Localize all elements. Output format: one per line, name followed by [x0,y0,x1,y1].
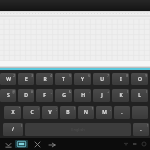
staticText: V [48,109,52,116]
button[interactable]: E [18,73,34,85]
button[interactable]: V [42,106,58,119]
staticText: : [38,107,39,111]
button[interactable]: N [78,106,94,119]
staticText: G [62,92,66,99]
staticText: J [101,92,103,99]
staticText: ; [56,107,57,111]
button[interactable]: M [96,106,112,119]
staticText: T [62,76,65,83]
staticText: English [71,127,85,132]
staticText: 9 [145,74,147,78]
button[interactable]: G [55,89,72,102]
staticText: \ [20,124,22,128]
button[interactable]: L [131,89,148,102]
button[interactable]: C [23,106,40,119]
button[interactable]: W [0,73,16,85]
staticText: R [43,76,47,83]
staticText: . [140,126,142,133]
staticText: & [68,90,71,94]
staticText: # [31,90,33,94]
staticText: ! [147,124,148,128]
staticText: 2 [13,74,15,78]
staticText: C [30,109,34,116]
button[interactable] [132,106,148,119]
staticText: Y [81,76,84,83]
button[interactable]: Wifi [123,141,129,147]
staticText: D [24,92,28,99]
staticText: 5 [69,74,71,78]
button[interactable]: U [93,73,110,85]
staticText: . [121,109,123,116]
staticText: U [100,76,104,83]
button[interactable]: H [74,89,91,102]
button[interactable]: F [36,89,53,102]
button[interactable]: Close [33,140,42,149]
button[interactable]: . [133,123,149,136]
button[interactable]: X [4,106,21,119]
staticText: ! [74,107,75,111]
staticText: 7 [107,74,109,78]
button[interactable]: . [114,106,130,119]
staticText: K [119,92,123,99]
button[interactable]: B [60,106,76,119]
staticText: X [11,109,15,116]
staticText: ) [146,90,147,94]
staticText: E [25,76,28,83]
staticText: N [84,109,88,116]
button[interactable]: S [0,89,16,102]
button[interactable]: J [93,89,110,102]
staticText: ( [127,90,128,94]
staticText: _ [50,90,52,94]
staticText: + [107,90,109,94]
staticText: L [138,92,141,99]
staticText: 6 [88,74,90,78]
staticText: @ [12,90,15,94]
staticText: O [138,76,142,83]
staticText: W [6,76,11,83]
staticText: / [12,126,14,133]
staticText: B [66,109,70,116]
staticText: " [18,107,20,111]
staticText: 8 [126,74,128,78]
button[interactable]: Y [74,73,91,85]
staticText: F [43,92,46,99]
button[interactable]: O [131,73,148,85]
staticText: H [81,92,85,99]
staticText: - [89,90,90,94]
staticText: M [102,109,107,116]
button[interactable]: T [55,73,72,85]
staticText: ? [91,107,93,111]
button[interactable]: K [112,89,129,102]
button[interactable]: D [18,89,34,102]
staticText: , [110,107,111,111]
button[interactable]: Hide keyboard [3,139,13,149]
staticText: 4 [50,74,52,78]
button[interactable]: I [112,73,129,85]
staticText: I [120,76,122,83]
button[interactable]: R [36,73,53,85]
staticText: S [7,92,10,99]
button[interactable]: Clock [141,141,147,147]
button[interactable]: Next [47,140,56,149]
button[interactable]: Switch input method [15,140,28,148]
button[interactable]: / [3,123,23,136]
button[interactable]: Battery [132,141,138,147]
staticText: 3 [31,74,33,78]
